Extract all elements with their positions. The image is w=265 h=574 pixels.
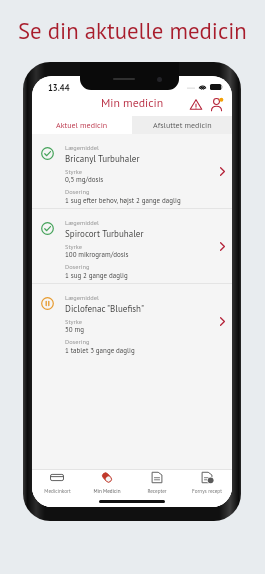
button[interactable]: Lægemiddel	[32, 284, 232, 358]
button[interactable]: Lægemiddel	[32, 134, 232, 208]
staticText: Spirocort Turbuhaler	[65, 228, 144, 240]
staticText: Dosering	[65, 187, 90, 195]
staticText: 1 sug efter behov, højst 2 gange daglig	[65, 196, 181, 205]
staticText: Dosering	[65, 337, 90, 345]
staticText: 50 mg	[65, 325, 84, 334]
button[interactable]: Afsluttet medicin	[132, 116, 232, 134]
button[interactable]: Lægemiddel	[32, 209, 232, 283]
staticText: Medicinkort	[44, 488, 71, 495]
staticText: Se din aktuelle medicin	[18, 16, 247, 46]
staticText: Aktuel medicin	[56, 120, 108, 130]
button[interactable]: Advarsler	[187, 96, 204, 113]
staticText: Lægemiddel	[65, 143, 99, 151]
staticText: Lægemiddel	[65, 293, 99, 301]
staticText: 1 sug 2 gange daglig	[65, 271, 128, 280]
staticText: Dosering	[65, 262, 90, 270]
button[interactable]: Min Medicin	[82, 470, 132, 496]
staticText: Min medicin	[101, 95, 164, 110]
staticText: Styrke	[65, 167, 82, 175]
staticText: Styrke	[65, 317, 82, 325]
button[interactable]: Profil	[208, 96, 225, 113]
button[interactable]: Medicinkort	[32, 470, 82, 496]
staticText: Bricanyl Turbuhaler	[65, 153, 140, 165]
staticText: 13.44	[48, 82, 70, 93]
staticText: Afsluttet medicin	[153, 120, 212, 130]
staticText: 0,5 mg/dosis	[65, 175, 104, 184]
staticText: Min Medicin	[93, 488, 121, 495]
button[interactable]: Recepter	[132, 470, 182, 496]
button[interactable]: Fornys recept	[182, 470, 232, 496]
staticText: Diclofenac "Bluefish"	[65, 303, 144, 315]
staticText: 1 tablet 3 gange daglig	[65, 346, 135, 355]
staticText: Fornys recept	[192, 488, 222, 495]
staticText: Recepter	[147, 488, 167, 495]
staticText: Styrke	[65, 242, 82, 250]
staticText: 100 mikrogram/dosis	[65, 250, 129, 259]
button[interactable]: Aktuel medicin	[32, 116, 132, 134]
staticText: Lægemiddel	[65, 218, 99, 226]
